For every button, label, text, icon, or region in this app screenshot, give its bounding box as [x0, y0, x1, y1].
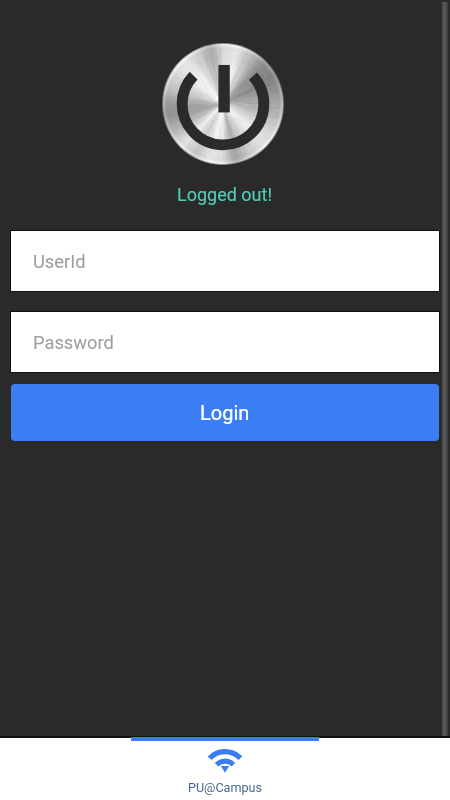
staticText: PU@Campus: [188, 780, 263, 795]
staticText: Password: [33, 332, 114, 353]
staticText: UserId: [33, 251, 86, 272]
other: PU@Campus Wi-Fi: [207, 748, 243, 773]
staticText: Logged out!: [177, 184, 273, 205]
button[interactable]: Password: [10, 311, 440, 373]
button[interactable]: PU@Campus Wi-Fi: [131, 738, 319, 800]
button[interactable]: UserId: [10, 230, 440, 292]
button[interactable]: Login: [11, 384, 439, 441]
staticText: Login: [200, 401, 250, 424]
